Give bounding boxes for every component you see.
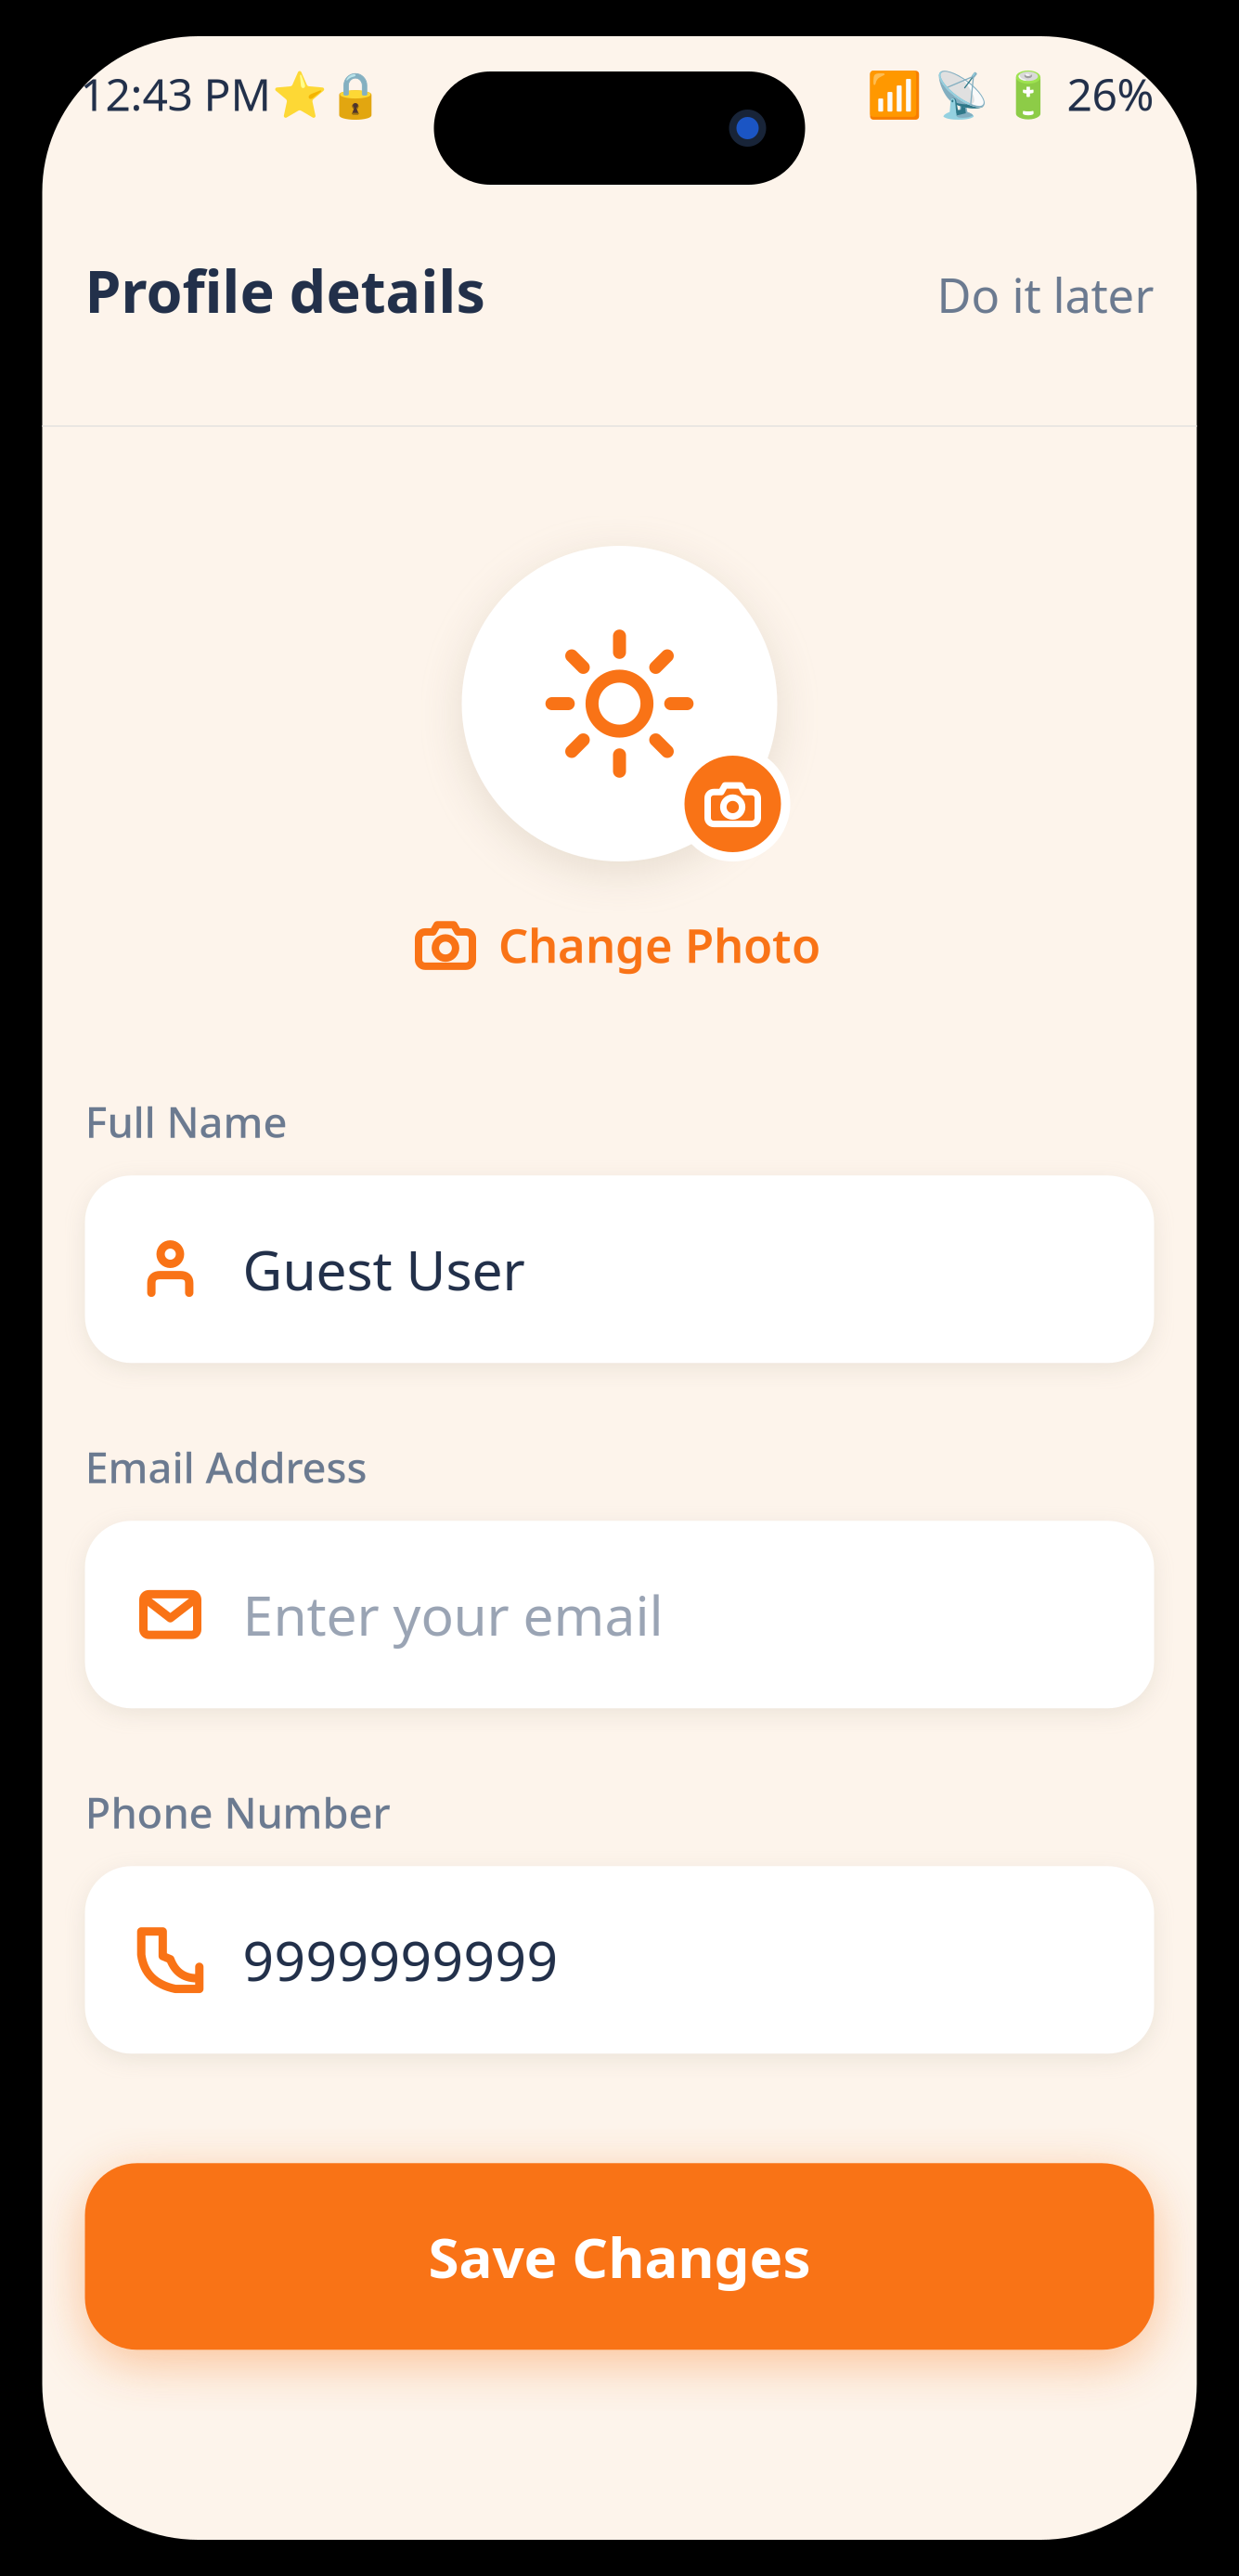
- staticText: Email Address: [85, 1439, 367, 1495]
- button[interactable]: Change Photo: [419, 913, 820, 976]
- staticText: 9999999999: [243, 1924, 558, 1996]
- staticText: 12:43 PM⭐🔒: [80, 64, 383, 123]
- staticText: Enter your email: [243, 1578, 663, 1651]
- button[interactable]: Do it later: [937, 263, 1154, 326]
- button[interactable]: Save Changes: [85, 2163, 1154, 2350]
- button[interactable]: 9999999999: [85, 1866, 1154, 2054]
- staticText: Do it later: [937, 263, 1154, 326]
- staticText: Full Name: [85, 1094, 287, 1150]
- staticText: Save Changes: [428, 2219, 811, 2293]
- button[interactable]: Enter your email: [85, 1521, 1154, 1708]
- staticText: Profile details: [85, 252, 485, 329]
- button[interactable]: Guest User: [85, 1175, 1154, 1363]
- button[interactable]: Change profile photo: [675, 746, 790, 861]
- staticText: Phone Number: [85, 1784, 390, 1840]
- staticText: Guest User: [243, 1233, 525, 1305]
- staticText: Change Photo: [498, 913, 820, 976]
- staticText: 📶 📡 🔋 26%: [866, 64, 1154, 123]
